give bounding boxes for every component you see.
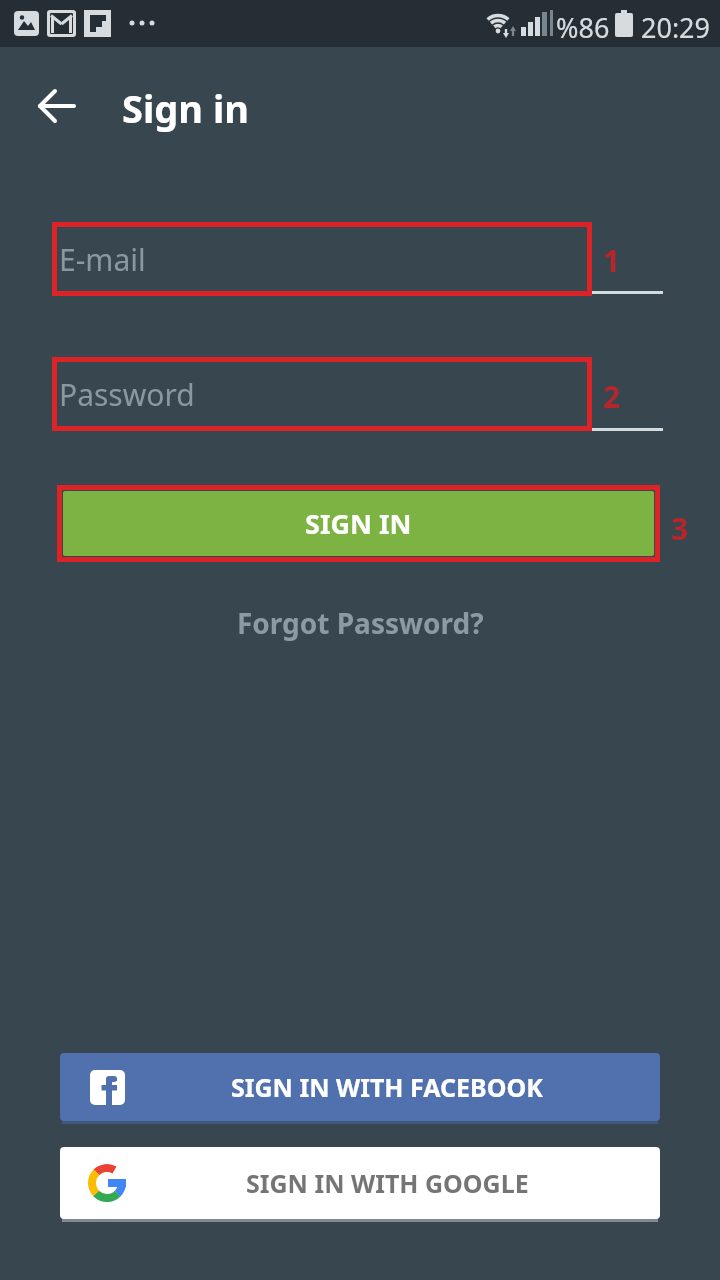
staticText: SIGN IN WITH GOOGLE [246,1166,529,1200]
button[interactable]: Password [52,357,592,431]
staticText: 1 [603,240,621,281]
staticText: 3 [671,508,689,549]
button[interactable]: SIGN IN WITH FACEBOOK [60,1053,660,1121]
staticText: Sign in [122,82,249,134]
button[interactable]: SIGN IN [63,491,654,556]
button[interactable] [38,87,76,125]
staticText: SIGN IN [305,505,412,542]
staticText: 2 [603,376,621,417]
button[interactable]: SIGN IN WITH GOOGLE [60,1147,660,1219]
staticText: Password [59,374,195,415]
button[interactable]: E-mail [52,222,592,296]
button[interactable]: Forgot Password? [237,604,484,642]
staticText: SIGN IN WITH FACEBOOK [231,1070,543,1104]
staticText: E-mail [59,239,146,280]
staticText: 20:29 [641,9,711,46]
staticText: %86 [556,9,610,46]
